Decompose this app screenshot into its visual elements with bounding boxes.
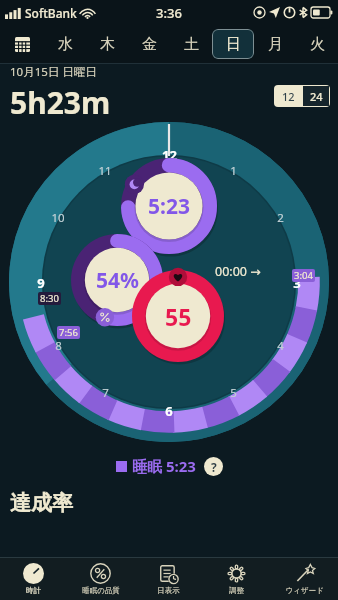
- staticText: 7: [102, 385, 109, 401]
- staticText: 4: [277, 338, 284, 354]
- staticText: 12: [282, 89, 295, 104]
- staticText: 54%: [96, 266, 139, 295]
- staticText: 7:56: [59, 326, 78, 339]
- staticText: 9: [37, 274, 45, 290]
- staticText: 55: [165, 301, 192, 332]
- staticText: 睡眠の品質: [82, 586, 120, 595]
- button[interactable]: Help: [204, 457, 223, 476]
- staticText: 3: [293, 274, 301, 290]
- staticText: 5:23: [148, 192, 190, 221]
- staticText: SoftBank: [25, 5, 77, 21]
- staticText: 日表示: [157, 586, 180, 595]
- staticText: 3:04: [294, 269, 313, 282]
- staticText: 12: [162, 146, 177, 162]
- staticText: 日: [226, 35, 241, 54]
- button[interactable]: 睡眠 5:23: [116, 456, 196, 476]
- button[interactable]: 土: [170, 29, 212, 59]
- button[interactable]: 木: [86, 29, 128, 59]
- staticText: 5: [230, 385, 237, 401]
- button[interactable]: 火: [296, 29, 338, 59]
- staticText: 5h23m: [10, 82, 111, 122]
- staticText: 達成率: [10, 490, 73, 516]
- button[interactable]: 時計: [0, 558, 67, 600]
- button[interactable]: 調整: [202, 558, 270, 600]
- staticText: 6: [165, 402, 173, 418]
- staticText: 時計: [26, 586, 41, 595]
- staticText: 3:36: [156, 4, 182, 22]
- staticText: 火: [310, 35, 325, 54]
- button[interactable]: 水: [44, 29, 86, 59]
- button[interactable]: 24: [302, 85, 330, 107]
- staticText: 00:00 →: [215, 263, 261, 280]
- staticText: 24: [310, 89, 323, 104]
- staticText: 木: [100, 35, 115, 54]
- staticText: 2: [277, 210, 284, 226]
- staticText: 土: [184, 35, 199, 54]
- staticText: 8: [55, 338, 62, 354]
- staticText: 調整: [229, 586, 244, 595]
- staticText: 10: [51, 210, 65, 226]
- staticText: 1: [230, 163, 237, 179]
- staticText: 金: [142, 35, 157, 54]
- button[interactable]: 睡眠の品質: [67, 558, 134, 600]
- button[interactable]: 日: [212, 29, 254, 59]
- button[interactable]: Calendar: [0, 25, 44, 63]
- button[interactable]: 12: [274, 85, 302, 107]
- button[interactable]: 日表示: [134, 558, 202, 600]
- staticText: 10月15日 日曜日: [10, 64, 97, 80]
- button[interactable]: ウィザード: [270, 558, 338, 600]
- staticText: 11: [98, 163, 112, 179]
- staticText: 水: [58, 35, 73, 54]
- staticText: 月: [268, 35, 283, 54]
- button[interactable]: 金: [128, 29, 170, 59]
- staticText: ?: [211, 459, 217, 475]
- button[interactable]: 月: [254, 29, 296, 59]
- staticText: 睡眠 5:23: [132, 456, 196, 476]
- staticText: ウィザード: [285, 586, 324, 595]
- staticText: 8:30: [40, 292, 59, 305]
